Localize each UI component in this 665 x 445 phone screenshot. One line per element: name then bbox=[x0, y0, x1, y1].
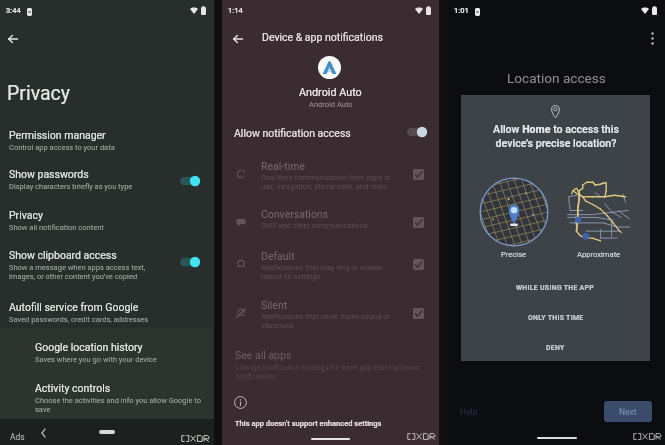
staticText: Show passwords bbox=[9, 168, 89, 180]
staticText: SMS and other communications bbox=[261, 221, 368, 230]
button[interactable]: Privacy bbox=[0, 208, 214, 246]
button[interactable]: WHILE USING THE APP bbox=[461, 275, 650, 301]
button[interactable]: Autofill service from Google bbox=[0, 300, 214, 338]
staticText: Approximate bbox=[577, 250, 621, 259]
button[interactable]: Allow notification access bbox=[222, 122, 439, 146]
button[interactable]: Show passwords bbox=[0, 167, 214, 205]
staticText: Android Auto bbox=[309, 100, 353, 109]
staticText: Show clipboard access bbox=[9, 249, 117, 261]
button[interactable]: Show clipboard access bbox=[0, 248, 214, 286]
staticText: Show all notification content bbox=[9, 223, 104, 232]
button[interactable]: Next bbox=[604, 401, 652, 422]
staticText: Default bbox=[261, 250, 295, 262]
staticText: Display characters briefly as you type bbox=[9, 182, 133, 191]
button[interactable]: DENY bbox=[461, 335, 650, 361]
staticText: Ads bbox=[10, 432, 25, 442]
staticText: Real-time communication from apps in use… bbox=[261, 173, 391, 191]
staticText: Privacy bbox=[9, 209, 43, 221]
staticText: Autofill service from Google bbox=[9, 301, 139, 313]
button[interactable]: ONLY THIS TIME bbox=[461, 305, 650, 331]
button[interactable]: Activity controls bbox=[0, 381, 214, 417]
staticText: Location access bbox=[507, 70, 606, 86]
staticText: Saves where you go with your device bbox=[35, 355, 157, 364]
button[interactable]: Real-time bbox=[222, 159, 439, 199]
staticText: 1:01 bbox=[454, 6, 469, 15]
button[interactable]: Silent bbox=[222, 298, 439, 338]
staticText: Change notification settings for each ap… bbox=[235, 363, 420, 381]
staticText: Permission manager bbox=[9, 129, 106, 141]
button[interactable]: See all apps bbox=[222, 349, 439, 379]
staticText: Real-time bbox=[261, 160, 305, 172]
staticText: See all apps bbox=[235, 349, 292, 361]
button[interactable]: Default bbox=[222, 249, 439, 289]
staticText: Choose the activities and info you allow… bbox=[35, 396, 201, 414]
staticText: Show a message when apps access text, im… bbox=[9, 263, 146, 281]
staticText: ONLY THIS TIME bbox=[528, 314, 584, 322]
button[interactable]: Google location history bbox=[0, 340, 214, 376]
staticText: Next bbox=[619, 407, 637, 417]
button[interactable]: Permission manager bbox=[0, 128, 214, 166]
staticText: WHILE USING THE APP bbox=[516, 284, 595, 292]
staticText: Silent bbox=[261, 299, 288, 311]
button[interactable]: More options bbox=[642, 28, 662, 48]
staticText: Control app access to your data bbox=[9, 143, 115, 152]
staticText: Activity controls bbox=[35, 382, 111, 394]
button[interactable]: Back bbox=[226, 27, 249, 50]
staticText: Google location history bbox=[35, 341, 143, 353]
staticText: 3:44 bbox=[6, 6, 21, 15]
staticText: Saved passwords, credit cards, addresses bbox=[9, 315, 149, 324]
staticText: Device & app notifications bbox=[262, 31, 383, 43]
button[interactable]: Conversations bbox=[222, 207, 439, 247]
staticText: Allow notification access bbox=[234, 127, 351, 139]
staticText: Conversations bbox=[261, 208, 329, 220]
button[interactable]: Help bbox=[456, 403, 482, 421]
button[interactable]: Back bbox=[1, 27, 24, 50]
staticText: 1:14 bbox=[228, 6, 243, 15]
staticText: Android Auto bbox=[299, 86, 362, 99]
staticText: Help bbox=[460, 407, 478, 417]
staticText: Notifications that may ring or vibrate b… bbox=[261, 263, 383, 281]
staticText: Allow Home to access this device's preci… bbox=[493, 123, 619, 150]
staticText: This app doesn't support enhanced settin… bbox=[235, 419, 382, 428]
staticText: Notifications that never make sound or v… bbox=[261, 312, 391, 330]
staticText: Privacy bbox=[7, 82, 70, 105]
staticText: DENY bbox=[546, 344, 565, 352]
staticText: Precise bbox=[501, 250, 527, 259]
